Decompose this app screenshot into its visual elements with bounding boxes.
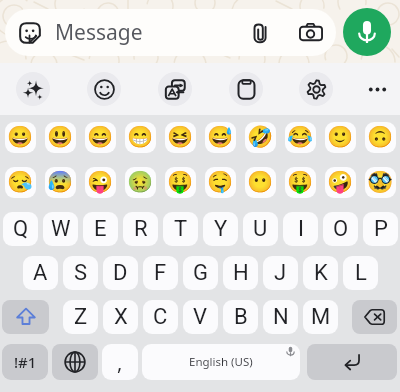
staticText: O — [333, 216, 349, 242]
staticText: Y — [214, 216, 228, 242]
staticText: H — [233, 260, 249, 286]
button[interactable]: Emoji — [280, 160, 320, 205]
button[interactable]: Enter — [307, 344, 397, 380]
button[interactable]: Shift — [2, 300, 49, 334]
button[interactable]: U — [243, 212, 278, 246]
staticText: 🤑 — [167, 170, 194, 195]
button[interactable]: F — [143, 256, 178, 290]
staticText: English (US) — [189, 354, 253, 370]
button[interactable]: X — [103, 300, 138, 334]
staticText: E — [94, 216, 107, 242]
button[interactable]: Sticker — [5, 9, 336, 56]
staticText: B — [234, 304, 248, 330]
button[interactable]: Emoji — [320, 160, 360, 205]
button[interactable]: S — [63, 256, 98, 290]
staticText: 😆 — [167, 125, 194, 150]
staticText: X — [114, 304, 128, 330]
staticText: 😶 — [247, 170, 274, 195]
button[interactable]: T — [163, 212, 198, 246]
button[interactable]: H — [223, 256, 258, 290]
staticText: U — [253, 216, 268, 242]
button[interactable]: L — [343, 256, 378, 290]
staticText: Z — [74, 304, 88, 330]
button[interactable]: N — [263, 300, 298, 334]
staticText: R — [134, 216, 148, 242]
button[interactable]: Emoji — [360, 160, 400, 205]
button[interactable]: Z — [63, 300, 98, 334]
button[interactable]: Keyboard settings — [294, 67, 338, 111]
button[interactable]: , — [102, 344, 138, 380]
staticText: 🙂 — [327, 125, 354, 150]
staticText: Q — [13, 216, 29, 242]
staticText: , — [117, 349, 123, 376]
button[interactable]: P — [363, 212, 398, 246]
button[interactable]: Emoji — [200, 160, 240, 205]
staticText: G — [193, 260, 208, 286]
staticText: Message — [55, 18, 143, 47]
button[interactable]: M — [303, 300, 338, 334]
staticText: C — [153, 304, 168, 330]
button[interactable]: Emoji — [240, 115, 280, 160]
button[interactable]: Emoji — [80, 160, 120, 205]
staticText: 🤪 — [327, 170, 354, 195]
button[interactable]: Attach — [240, 13, 280, 53]
button[interactable]: J — [263, 256, 298, 290]
button[interactable]: Emoji — [80, 115, 120, 160]
button[interactable]: Emoji — [40, 160, 80, 205]
button[interactable]: Emoji — [82, 67, 126, 111]
staticText: 🤢 — [127, 170, 154, 195]
button[interactable]: D — [103, 256, 138, 290]
staticText: T — [174, 216, 188, 242]
button[interactable]: C — [143, 300, 178, 334]
button[interactable]: Emoji — [240, 160, 280, 205]
button[interactable]: Emoji — [320, 115, 360, 160]
button[interactable]: W — [43, 212, 78, 246]
button[interactable]: Backspace — [352, 300, 397, 334]
button[interactable]: Emoji — [160, 160, 200, 205]
button[interactable]: O — [323, 212, 358, 246]
button[interactable]: Emoji — [200, 115, 240, 160]
button[interactable]: Q — [3, 212, 38, 246]
staticText: K — [314, 260, 328, 286]
staticText: 😪 — [7, 170, 34, 195]
staticText: 😜 — [87, 170, 114, 195]
staticText: M — [311, 304, 331, 330]
button[interactable]: Clipboard — [224, 67, 268, 111]
button[interactable]: !#1 — [2, 344, 48, 380]
button[interactable]: Emoji — [40, 115, 80, 160]
staticText: 🥸 — [367, 170, 394, 195]
button[interactable]: GIF — [153, 67, 197, 111]
button[interactable]: Stickers — [11, 67, 55, 111]
button[interactable]: English (US) — [142, 344, 300, 380]
button[interactable]: Emoji — [0, 115, 40, 160]
button[interactable]: Emoji — [280, 115, 320, 160]
button[interactable]: Y — [203, 212, 238, 246]
button[interactable]: Emoji — [160, 115, 200, 160]
staticText: N — [273, 304, 289, 330]
button[interactable]: K — [303, 256, 338, 290]
button[interactable]: Emoji — [120, 160, 160, 205]
button[interactable]: Sticker — [12, 15, 48, 51]
button[interactable]: More options — [355, 67, 399, 111]
staticText: 🤤 — [207, 170, 234, 195]
button[interactable]: E — [83, 212, 118, 246]
button[interactable]: I — [283, 212, 318, 246]
button[interactable]: Emoji — [120, 115, 160, 160]
staticText: A — [33, 260, 48, 286]
button[interactable]: Emoji — [360, 115, 400, 160]
button[interactable]: Change language — [52, 344, 98, 380]
staticText: D — [113, 260, 128, 286]
button[interactable]: V — [183, 300, 218, 334]
button[interactable]: Voice message — [343, 8, 391, 56]
staticText: 😅 — [207, 125, 234, 150]
staticText: P — [374, 216, 388, 242]
button[interactable]: Emoji — [0, 160, 40, 205]
button[interactable]: B — [223, 300, 258, 334]
button[interactable]: G — [183, 256, 218, 290]
staticText: 😃 — [47, 125, 74, 150]
button[interactable]: R — [123, 212, 158, 246]
staticText: I — [298, 216, 304, 242]
staticText: S — [74, 260, 88, 286]
button[interactable]: A — [23, 256, 58, 290]
button[interactable]: Camera — [291, 13, 331, 53]
